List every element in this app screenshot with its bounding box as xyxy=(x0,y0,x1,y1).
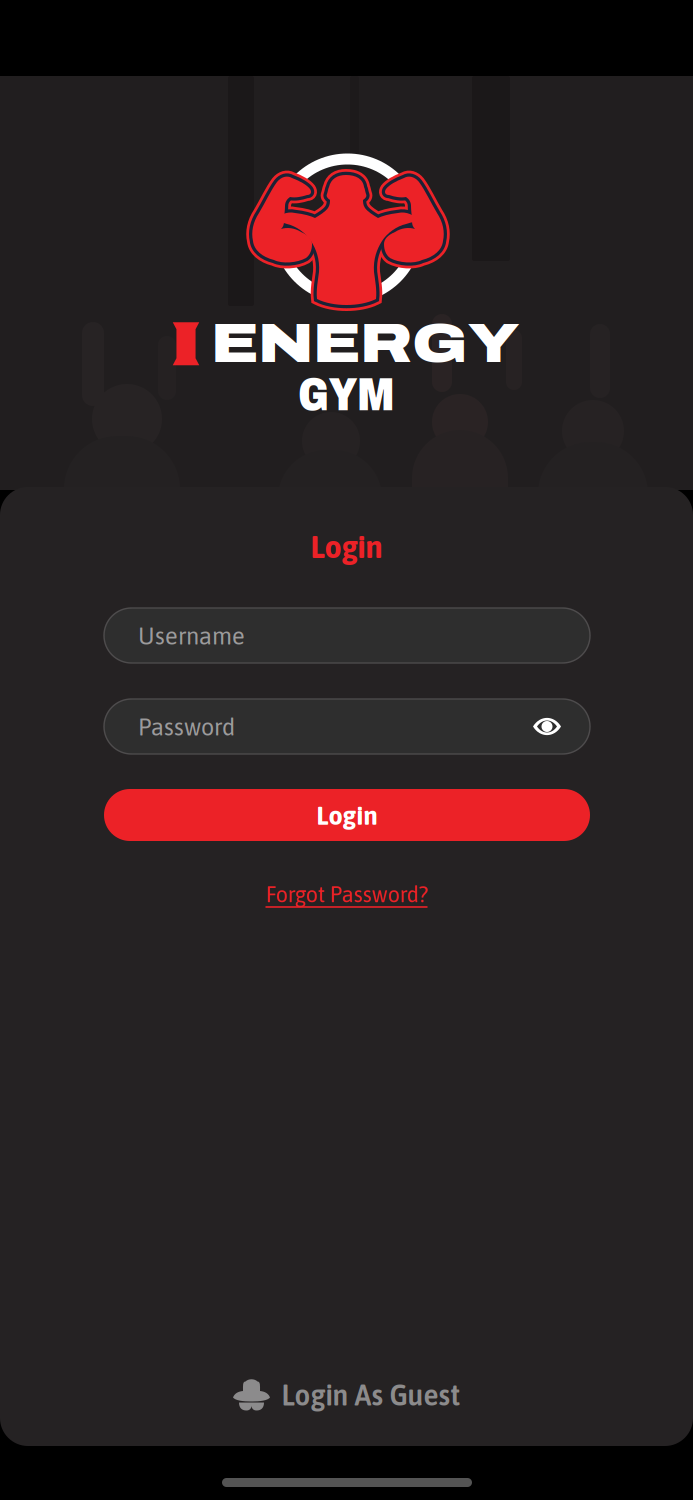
staticText: Login xyxy=(316,800,377,830)
staticText: ENERGY xyxy=(211,314,520,373)
staticText: Login xyxy=(310,528,382,565)
staticText: Username xyxy=(138,621,245,650)
staticText: Password xyxy=(138,712,235,741)
button[interactable]: Login xyxy=(104,789,590,841)
button[interactable]: Login As Guest xyxy=(0,1369,693,1421)
staticText: Login As Guest xyxy=(281,1378,460,1412)
button[interactable]: Show password xyxy=(525,706,569,746)
staticText: GYM xyxy=(298,370,395,420)
staticText: Forgot Password? xyxy=(265,881,427,907)
button[interactable]: Forgot Password? xyxy=(0,877,693,911)
